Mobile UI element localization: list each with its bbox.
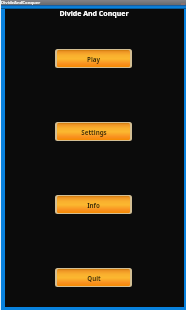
button[interactable]: Quit: [57, 269, 130, 286]
button[interactable]: Info: [57, 196, 130, 213]
staticText: DivideAndConquer: [1, 0, 41, 5]
staticText: Settings: [81, 128, 107, 136]
staticText: Info: [87, 201, 100, 209]
button[interactable]: Play: [57, 50, 130, 67]
staticText: Divide And Conquer: [59, 9, 129, 19]
staticText: Quit: [87, 274, 101, 282]
staticText: Play: [87, 55, 100, 63]
button[interactable]: Settings: [57, 123, 130, 140]
